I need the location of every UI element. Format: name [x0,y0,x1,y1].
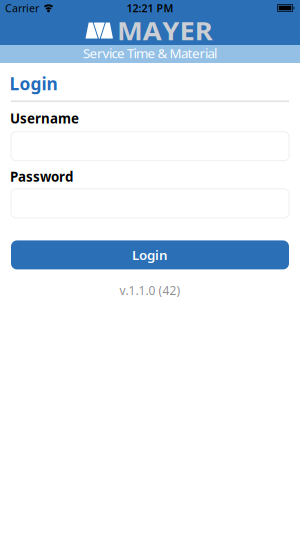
staticText: v.1.1.0 (42) [119,282,180,298]
staticText: E [178,14,192,47]
staticText: A [144,14,162,47]
staticText: Y [162,14,178,47]
staticText: R [192,14,209,47]
staticText: Password [10,168,73,185]
staticText: Username [10,109,79,127]
staticText: Login [9,72,57,95]
staticText: Login [132,246,168,264]
staticText: Service Time & Material [83,44,217,62]
textField[interactable] [19,131,289,161]
staticText: 12:21 PM [126,1,173,15]
button[interactable]: Login [11,240,289,269]
staticText: M [120,14,144,47]
staticText: Carrier [5,1,39,15]
